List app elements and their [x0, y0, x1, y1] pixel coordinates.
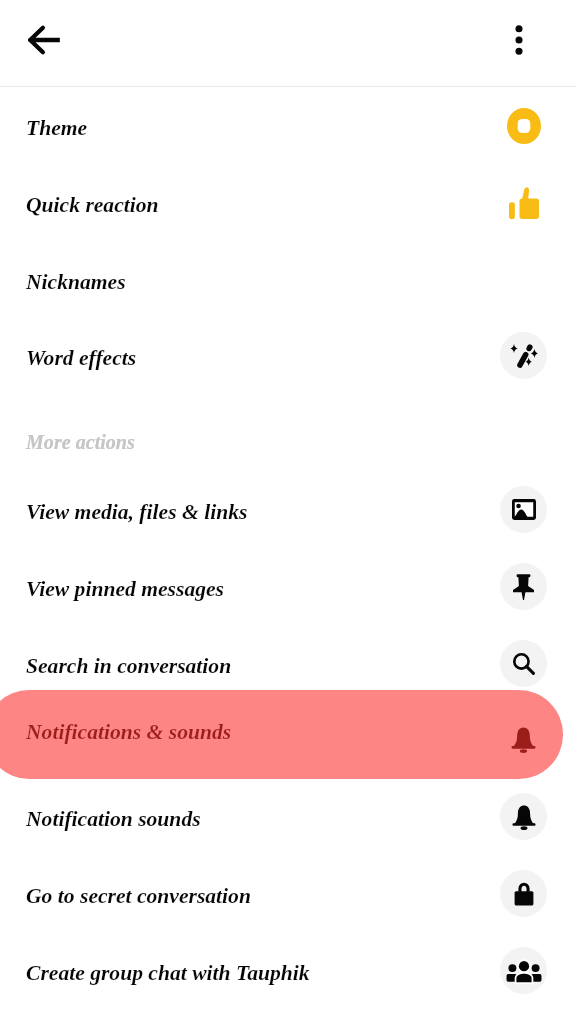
button[interactable]: Theme — [0, 87, 576, 164]
button[interactable]: More options — [494, 15, 544, 65]
button[interactable]: Thumbs up reaction — [500, 179, 547, 226]
button[interactable]: Word effects — [0, 317, 576, 394]
button[interactable]: Create group chat with Tauphik — [0, 932, 576, 1009]
staticText: Notification sounds — [26, 807, 201, 831]
button[interactable]: Search in conversation — [500, 640, 547, 687]
staticText: Theme — [26, 116, 88, 140]
button[interactable]: Notification sounds — [500, 793, 547, 840]
staticText: Go to secret conversation — [26, 884, 251, 908]
button[interactable]: Search in conversation — [0, 625, 576, 702]
staticText: Notifications & sounds — [26, 720, 232, 744]
staticText: Search in conversation — [26, 654, 232, 678]
button[interactable]: Notification sounds — [0, 778, 576, 855]
staticText: More actions — [26, 431, 135, 453]
button[interactable]: View media, files and links — [500, 486, 547, 533]
button[interactable]: Create group chat — [500, 947, 547, 994]
staticText: Word effects — [26, 346, 137, 370]
staticText: Quick reaction — [26, 193, 159, 217]
button[interactable]: Notifications and sounds — [500, 716, 547, 763]
button[interactable]: View pinned messages — [500, 563, 547, 610]
button[interactable]: Notifications & sounds — [0, 701, 576, 778]
button[interactable]: Back — [17, 12, 73, 68]
staticText: Nicknames — [26, 270, 126, 294]
button[interactable]: Nicknames — [0, 241, 576, 318]
button[interactable]: View media, files & links — [0, 471, 576, 548]
button[interactable]: Go to secret conversation — [500, 870, 547, 917]
staticText: View media, files & links — [26, 500, 248, 524]
button[interactable]: Word effects — [500, 332, 547, 379]
button[interactable]: Quick reaction — [0, 164, 576, 241]
staticText: View pinned messages — [26, 577, 224, 601]
button[interactable]: Go to secret conversation — [0, 855, 576, 932]
staticText: Create group chat with Tauphik — [26, 961, 310, 985]
button[interactable]: Theme colour — [500, 102, 547, 149]
button[interactable]: View pinned messages — [0, 548, 576, 625]
